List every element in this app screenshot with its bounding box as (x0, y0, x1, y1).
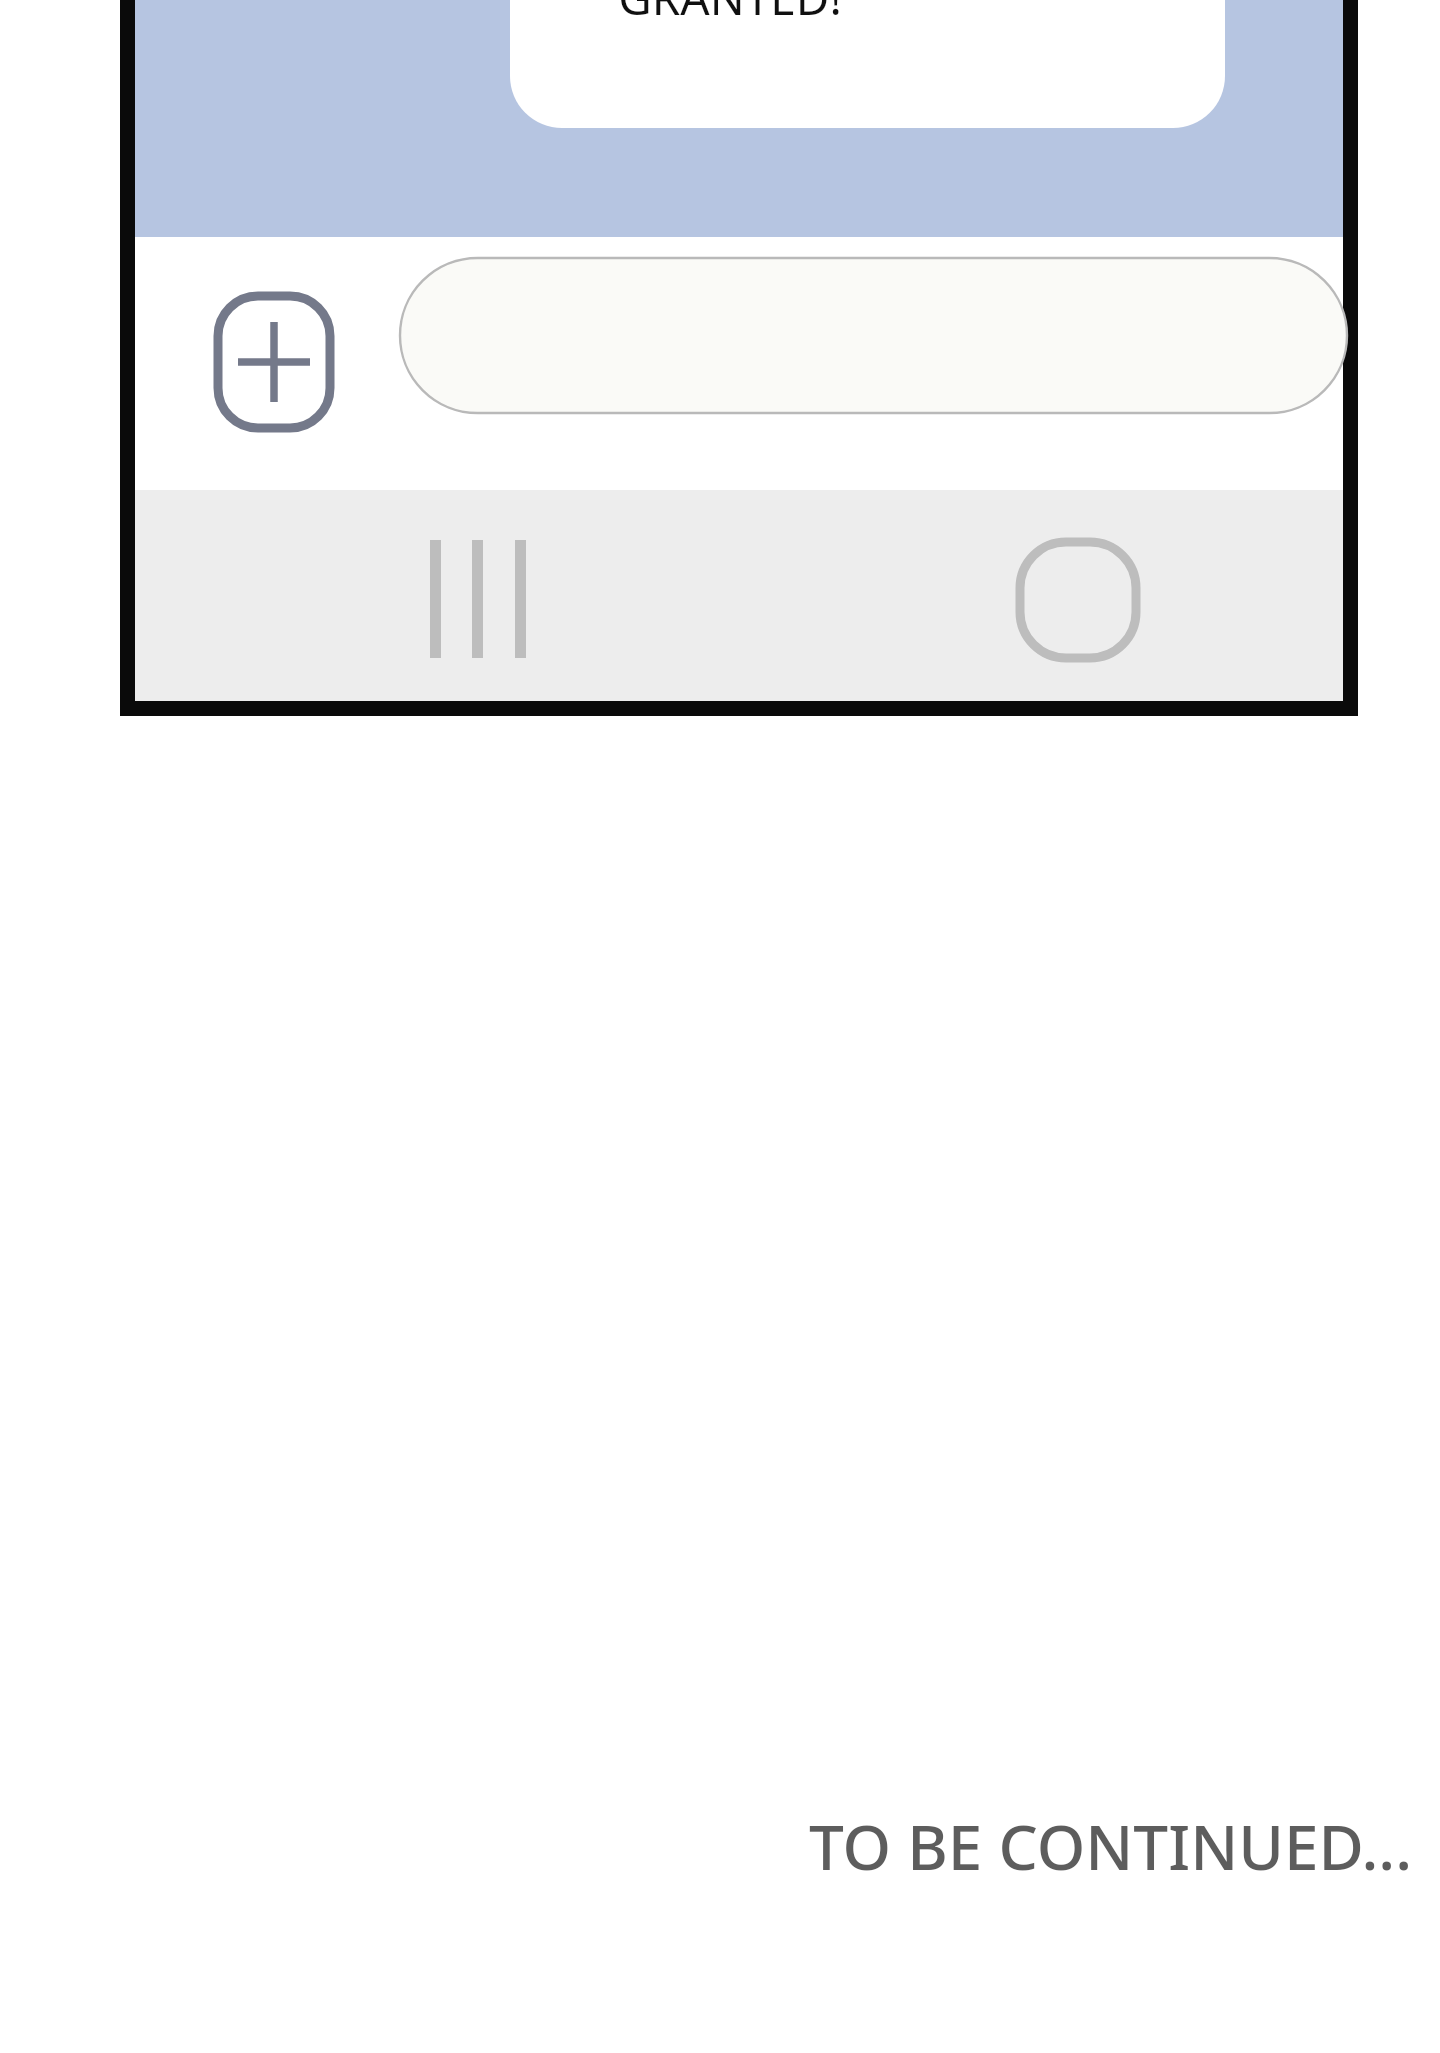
staticText: TO BE CONTINUED... (808, 1804, 1412, 1888)
button[interactable]: Message input field (400, 258, 1343, 413)
button[interactable]: Add attachment (218, 296, 330, 428)
staticText: GRANTED! (618, 0, 842, 26)
button[interactable]: Home (1000, 520, 1160, 680)
button[interactable]: Recents (400, 520, 560, 680)
